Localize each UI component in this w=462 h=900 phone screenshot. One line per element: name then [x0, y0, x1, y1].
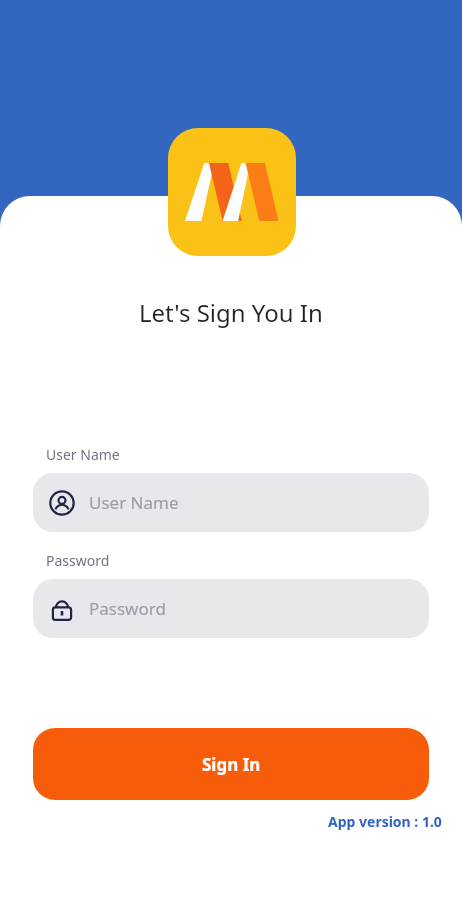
button[interactable]: Password: [33, 579, 429, 638]
staticText: User Name: [46, 445, 120, 464]
staticText: Password: [89, 597, 166, 620]
staticText: Password: [46, 551, 110, 570]
staticText: Sign In: [202, 753, 261, 776]
button[interactable]: Sign In: [33, 728, 429, 800]
staticText: Let's Sign You In: [139, 296, 323, 329]
staticText: App version : 1.0: [328, 812, 442, 831]
other: App logo: [168, 128, 296, 256]
button[interactable]: User Name: [33, 473, 429, 532]
staticText: User Name: [89, 491, 179, 514]
